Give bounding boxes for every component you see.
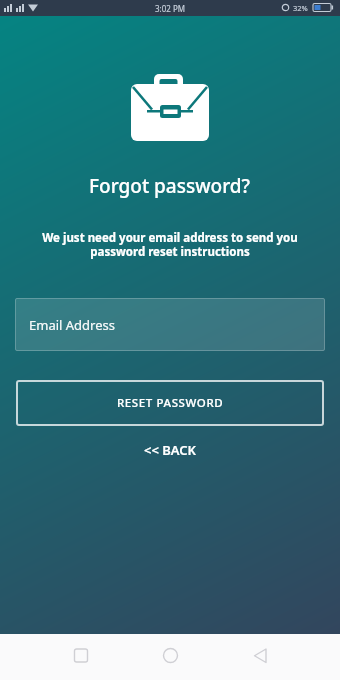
button[interactable] xyxy=(114,634,227,680)
staticText: We just need your email address to send … xyxy=(42,230,298,259)
button[interactable] xyxy=(227,634,340,680)
staticText: 3:02 PM xyxy=(155,3,186,14)
staticText: RESET PASSWORD xyxy=(117,395,224,411)
staticText: Email Address xyxy=(29,316,115,334)
staticText: Forgot password? xyxy=(89,173,251,199)
button[interactable]: << BACK xyxy=(140,437,201,463)
button[interactable]: RESET PASSWORD xyxy=(16,380,324,426)
staticText: 32% xyxy=(293,3,308,13)
button[interactable]: Email Address xyxy=(15,298,325,351)
button[interactable] xyxy=(0,634,114,680)
